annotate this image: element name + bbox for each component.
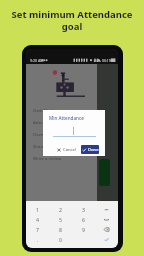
staticText: Dark Mode: [33, 107, 56, 113]
staticText: 6: [82, 216, 85, 223]
button[interactable]: Minus: [95, 204, 118, 214]
staticText: Attendance goal: [33, 119, 66, 125]
staticText: 0: [59, 236, 62, 243]
button[interactable]: Add: [99, 159, 110, 186]
staticText: 4: [36, 216, 39, 223]
button[interactable]: Cancel: [55, 145, 79, 154]
button[interactable]: 0: [49, 234, 72, 244]
button[interactable]: 7: [26, 224, 49, 234]
button[interactable]: Enter: [95, 234, 118, 244]
staticText: 3: [82, 206, 85, 213]
staticText: .: [37, 236, 39, 243]
button[interactable]: Share app: [26, 140, 97, 152]
staticText: 9:20 AM: [30, 58, 44, 63]
staticText: 5: [59, 216, 62, 223]
button[interactable]: 4: [26, 214, 49, 224]
staticText: 8: [59, 226, 62, 233]
button[interactable]: 9: [72, 224, 95, 234]
button[interactable]: 8: [49, 224, 72, 234]
staticText: 2: [59, 206, 62, 213]
staticText: Done: [88, 147, 99, 153]
button[interactable]: 2: [49, 204, 72, 214]
button[interactable]: Developer: [26, 128, 97, 140]
button[interactable]: .: [26, 234, 49, 244]
staticText: 1: [36, 206, 39, 213]
button[interactable]: Attendance goal: [26, 116, 97, 128]
staticText: 9: [82, 226, 85, 233]
staticText: Set minimum Attendance goal: [9, 8, 135, 33]
staticText: Write a review: [33, 155, 62, 161]
button[interactable]: Dark Mode: [26, 104, 97, 116]
staticText: Developer: [33, 131, 54, 137]
button[interactable]: Space: [95, 214, 118, 224]
button[interactable]: Backspace: [95, 224, 118, 234]
button[interactable]: 1: [26, 204, 49, 214]
button[interactable]: 5: [49, 214, 72, 224]
button[interactable]: Write a review: [26, 152, 97, 164]
button[interactable]: 3: [72, 204, 95, 214]
button[interactable]: Done: [81, 145, 99, 154]
staticText: 7: [36, 226, 39, 233]
staticText: Min Attendance: [49, 115, 84, 121]
staticText: Share app: [33, 143, 54, 149]
button[interactable]: 6: [72, 214, 95, 224]
staticText: Cancel: [63, 147, 77, 153]
staticText: 00:19: [102, 58, 111, 63]
